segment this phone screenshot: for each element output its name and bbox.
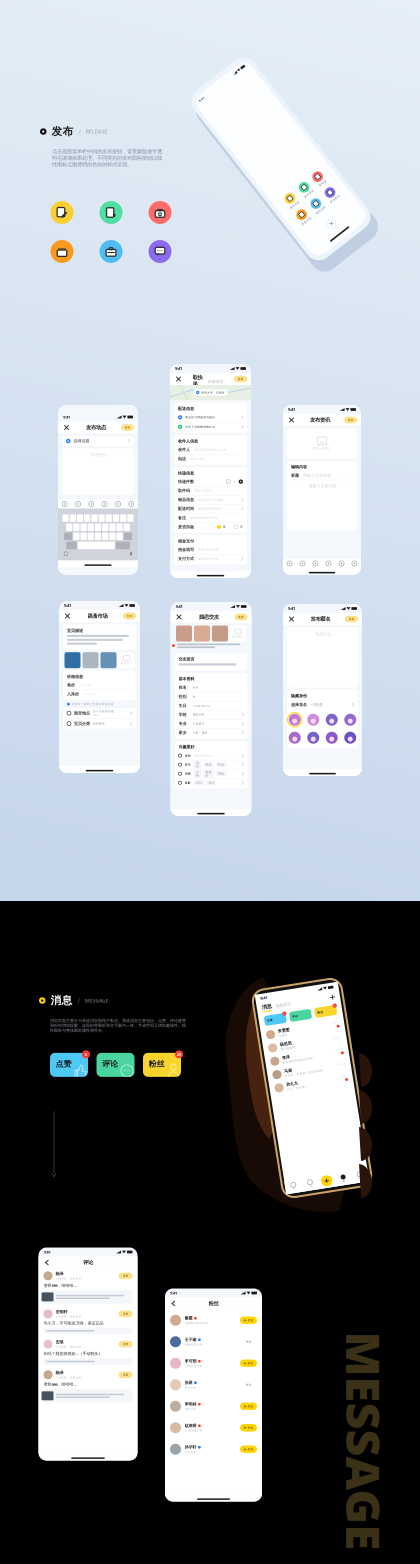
button[interactable]: 我的 <box>337 1178 354 1186</box>
button[interactable]: 关注 <box>240 1359 257 1367</box>
button[interactable]: 花名头像 <box>287 712 302 727</box>
button[interactable]: 关注 <box>240 1424 257 1431</box>
button[interactable]: 工具4 <box>322 559 335 568</box>
staticText: 动物 <box>185 772 191 775</box>
staticText: 9:41 <box>275 989 282 994</box>
staticText: 跳蚤市场 <box>87 613 107 619</box>
button[interactable]: 发布 <box>234 614 247 620</box>
button[interactable]: 新建 <box>344 999 349 1004</box>
button[interactable]: 关闭 <box>63 611 72 620</box>
staticText: 配送信息 <box>178 406 194 411</box>
staticText: 李泽 <box>287 1051 295 1056</box>
button[interactable]: 关闭 <box>174 612 183 621</box>
button[interactable]: 取快递 <box>148 201 171 224</box>
button[interactable]: 工具5 <box>111 499 125 508</box>
button[interactable]: 杨思思 <box>270 1035 354 1049</box>
button[interactable]: 花名头像 <box>324 712 339 727</box>
button[interactable]: 工具4 <box>98 499 111 508</box>
staticText: 取快递 <box>192 374 202 387</box>
button[interactable]: 花名头像 <box>306 730 321 745</box>
button[interactable]: 发布匿名 <box>148 240 171 263</box>
staticText: 杨泽 <box>55 1370 63 1375</box>
button[interactable]: 关闭 <box>287 614 296 623</box>
button[interactable]: 李泽 <box>270 1049 354 1062</box>
button[interactable]: 面交地点 <box>63 708 136 718</box>
staticText: 性别 <box>178 694 186 699</box>
button[interactable]: 关注 <box>240 1338 257 1345</box>
button[interactable]: 宝贝分类 <box>63 719 136 729</box>
button[interactable]: 回复 <box>118 1272 132 1279</box>
staticText: 关注 <box>245 1383 251 1386</box>
button[interactable]: 关注 <box>240 1316 257 1324</box>
button[interactable]: 粉丝 <box>143 1053 181 1077</box>
button[interactable]: 婚恋交友 <box>99 240 122 263</box>
button[interactable]: 返回 <box>42 1258 51 1267</box>
button[interactable]: 点赞 <box>50 1053 88 1077</box>
button[interactable]: 消息 <box>320 1178 337 1186</box>
staticText: 其他信息 <box>207 379 223 384</box>
button[interactable]: 工具1 <box>283 559 296 568</box>
staticText: 马超 <box>287 1065 295 1070</box>
button[interactable]: 花名头像 <box>324 730 339 745</box>
button[interactable]: 关闭 <box>174 374 183 383</box>
button[interactable]: 东区十五栋楼舍楼012 <box>174 422 247 431</box>
button[interactable]: 花名头像 <box>306 712 321 727</box>
button[interactable]: 发现 <box>287 1178 304 1186</box>
staticText: 服装配饰 <box>93 722 105 725</box>
button[interactable]: 评论 <box>96 1053 134 1077</box>
button[interactable]: 首页 <box>270 1178 287 1186</box>
button[interactable]: 花名头像 <box>287 730 302 745</box>
button[interactable]: 孙九九 <box>270 1076 354 1089</box>
button[interactable]: 关注 <box>240 1402 257 1410</box>
button[interactable]: 工具3 <box>85 499 98 508</box>
staticText: 工业设计 <box>192 722 204 725</box>
button[interactable]: 减少 <box>226 479 231 484</box>
button[interactable]: 是 <box>217 525 226 529</box>
staticText: 选择话题 <box>73 438 89 443</box>
button[interactable]: 工具3 <box>309 559 322 568</box>
button[interactable]: 工具2 <box>296 559 309 568</box>
staticText: 老铁666，哈哈哈... <box>43 1381 76 1387</box>
button[interactable]: 工具5 <box>335 559 348 568</box>
button[interactable]: 马超 <box>270 1062 354 1076</box>
staticText: 收件人 <box>178 447 190 452</box>
staticText: 女 <box>192 695 195 698</box>
button[interactable]: 回复 <box>118 1311 132 1317</box>
button[interactable]: 回复 <box>118 1341 132 1347</box>
button[interactable]: 回复 <box>118 1371 132 1378</box>
staticText: 请输入文章内容... <box>308 483 339 488</box>
staticText: 我的关注 <box>289 999 305 1004</box>
button[interactable]: 工具2 <box>71 499 85 508</box>
button[interactable]: 否 <box>230 525 243 529</box>
button[interactable]: 花名头像 <box>343 730 358 745</box>
staticText: 消息 <box>275 997 285 1004</box>
staticText: 电影 <box>185 781 191 784</box>
button[interactable]: 发布 <box>344 417 357 423</box>
button[interactable]: 关注 <box>240 1381 257 1388</box>
button[interactable]: 发布 <box>234 376 247 382</box>
button[interactable]: 返回 <box>169 1299 178 1308</box>
button[interactable]: 发布动态 <box>50 201 73 224</box>
button[interactable]: 工具6 <box>125 499 138 508</box>
button[interactable]: 工具6 <box>348 559 361 568</box>
button[interactable]: 花名头像 <box>343 712 358 727</box>
button[interactable]: 李雯雯 <box>270 1022 354 1035</box>
staticText: 12:01 <box>340 1040 349 1044</box>
staticText: 关注 <box>247 1405 253 1408</box>
staticText: 家乡 <box>178 730 186 735</box>
button[interactable]: 跳蚤市场 <box>50 240 73 263</box>
staticText: 山东 · 潍坊 <box>192 731 207 734</box>
button[interactable]: 关闭 <box>62 423 71 432</box>
staticText: 发布 <box>51 125 73 138</box>
button[interactable]: 商业区750国馆鸟朝运 <box>174 413 247 422</box>
button[interactable]: 发布 <box>123 613 136 619</box>
button[interactable]: 工具1 <box>58 499 71 508</box>
button[interactable]: 发布 <box>121 424 134 431</box>
staticText: 吃小刀，不可能龙刀啦，保证正品 <box>43 1321 103 1325</box>
button[interactable]: 关闭 <box>287 415 296 424</box>
button[interactable]: 增加 <box>239 479 243 484</box>
button[interactable]: 发布 <box>345 616 358 622</box>
button[interactable]: 关注 <box>240 1445 257 1453</box>
button[interactable]: 发布资讯 <box>99 201 122 224</box>
staticText: MESSAGE <box>84 997 108 1004</box>
